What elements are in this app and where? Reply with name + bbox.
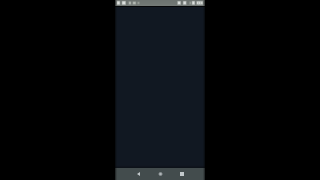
button[interactable]: Home [154, 168, 166, 180]
button[interactable]: Back [132, 168, 144, 180]
button[interactable]: Recents [176, 168, 188, 180]
